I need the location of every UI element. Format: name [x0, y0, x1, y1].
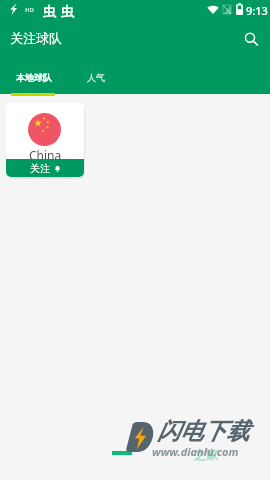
- staticText: 关注: [30, 162, 50, 175]
- staticText: 虫: [61, 3, 74, 19]
- staticText: 9:13: [246, 3, 268, 18]
- staticText: 之家: [194, 447, 218, 462]
- staticText: 关注球队: [10, 30, 62, 46]
- staticText: 闪电下载: [157, 417, 249, 446]
- staticText: China: [6, 147, 84, 163]
- staticText: 人气: [87, 72, 105, 83]
- button[interactable]: 人气: [68, 64, 123, 94]
- button[interactable]: 关注: [6, 159, 84, 177]
- button[interactable]: Search: [238, 26, 264, 52]
- button[interactable]: China: [6, 103, 84, 177]
- button[interactable]: 本地球队: [0, 64, 67, 94]
- staticText: 虫: [43, 3, 56, 19]
- staticText: HD: [25, 6, 34, 14]
- staticText: www.dianlu.com: [152, 444, 239, 459]
- staticText: 本地球队: [16, 72, 52, 83]
